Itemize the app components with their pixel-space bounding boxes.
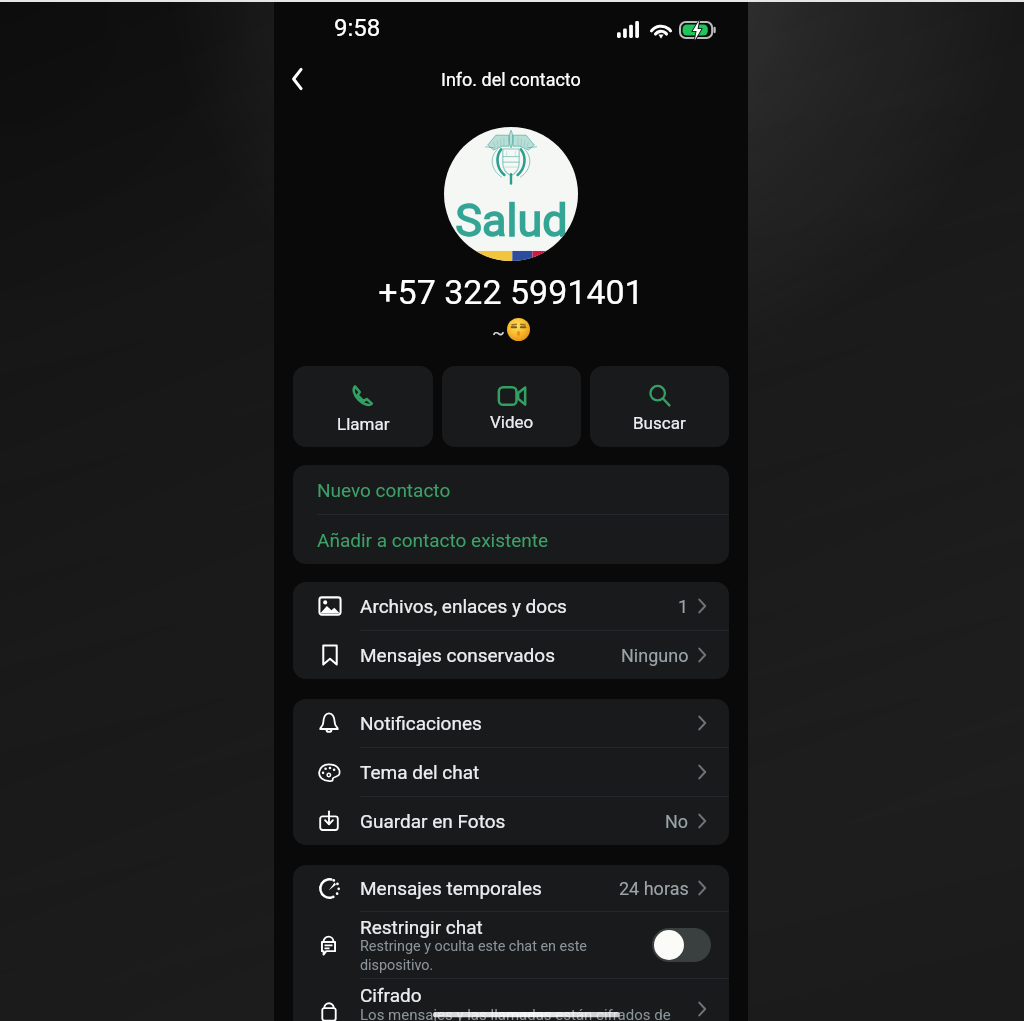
button[interactable]: Video xyxy=(442,366,581,447)
button[interactable]: Buscar xyxy=(590,366,729,447)
staticText: 1 xyxy=(678,596,689,617)
staticText: Cifrado xyxy=(360,984,422,1006)
button[interactable]: Llamar xyxy=(293,366,433,447)
staticText: Tema del chat xyxy=(360,761,694,783)
staticText: 24 horas xyxy=(619,878,689,899)
button[interactable]: Guardar en Fotos xyxy=(293,797,729,845)
staticText: Añadir a contacto existente xyxy=(317,529,549,551)
button[interactable]: Mensajes temporales xyxy=(293,865,729,911)
staticText: ~ xyxy=(492,321,505,343)
button[interactable]: Foto de perfil xyxy=(444,127,578,261)
staticText: Nuevo contacto xyxy=(317,479,451,501)
staticText: Salud xyxy=(455,194,568,247)
button[interactable]: Tema del chat xyxy=(293,748,729,796)
staticText: Los mensajes y las llamadas están cifrad… xyxy=(360,1006,671,1021)
staticText: Mensajes conservados xyxy=(360,644,621,666)
staticText: Ninguno xyxy=(621,645,689,666)
staticText: Video xyxy=(490,412,534,432)
button[interactable]: Restringir chat xyxy=(652,928,711,962)
staticText: Restringe y oculta este chat en este dis… xyxy=(360,938,610,974)
staticText: Info. del contacto xyxy=(441,69,581,90)
button[interactable]: Back xyxy=(276,58,320,100)
staticText: Mensajes temporales xyxy=(360,877,619,899)
staticText: Guardar en Fotos xyxy=(360,810,665,832)
button[interactable]: Restringir chat xyxy=(293,912,729,978)
staticText: No xyxy=(665,811,689,832)
button[interactable]: Nuevo contacto xyxy=(293,465,729,514)
staticText: Buscar xyxy=(633,413,686,433)
staticText: Notificaciones xyxy=(360,712,694,734)
staticText: +57 322 5991401 xyxy=(274,272,748,312)
staticText: Llamar xyxy=(337,414,390,434)
button[interactable]: Notificaciones xyxy=(293,699,729,747)
staticText: 9:58 xyxy=(334,14,381,42)
staticText: Archivos, enlaces y docs xyxy=(360,595,678,617)
button[interactable]: Añadir a contacto existente xyxy=(293,515,729,564)
button[interactable]: Cifrado xyxy=(293,979,729,1021)
button[interactable]: Archivos, enlaces y docs xyxy=(293,582,729,630)
staticText: Restringir chat xyxy=(360,916,483,938)
button[interactable]: Mensajes conservados xyxy=(293,631,729,679)
